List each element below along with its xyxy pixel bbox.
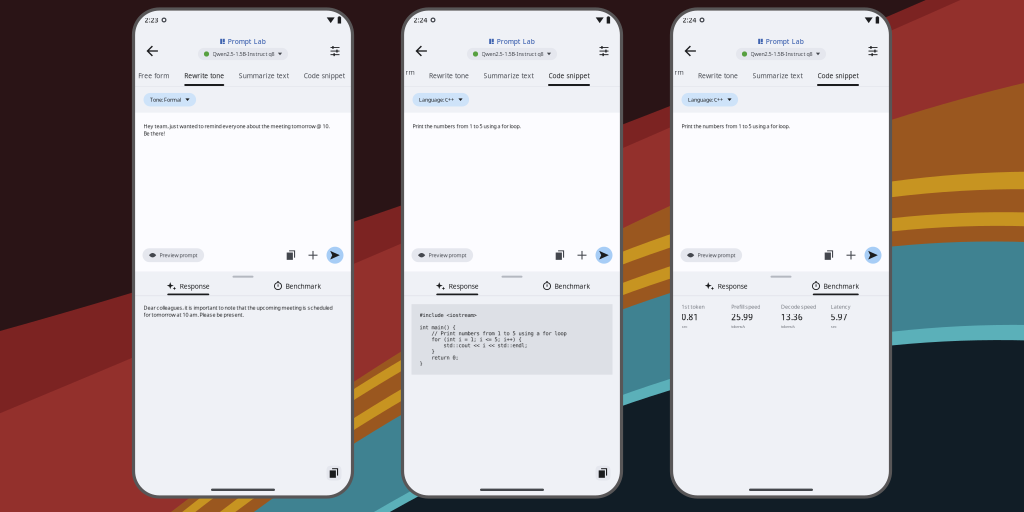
staticText: Preview prompt [698, 252, 736, 259]
staticText: int main() { [419, 324, 455, 330]
staticText: Language: C++ [419, 96, 454, 103]
staticText: Summarize text [483, 71, 533, 80]
button[interactable]: Summarize text [752, 65, 802, 86]
staticText: Prompt Lab [497, 37, 535, 46]
staticText: sec [681, 324, 687, 329]
button[interactable]: Preview prompt [680, 248, 742, 262]
staticText: sec [831, 324, 837, 329]
button[interactable]: Copy prompt [551, 247, 568, 264]
staticText: Hey team, just wanted to remind everyone… [143, 123, 329, 137]
staticText: tokens/s [731, 324, 745, 329]
staticText: 25.99 [731, 312, 753, 322]
button[interactable]: Send [864, 247, 881, 264]
button[interactable]: Back [140, 39, 164, 63]
staticText: Rewrite tone [429, 71, 469, 80]
staticText: Response [180, 282, 210, 291]
button[interactable]: Rewrite tone [429, 65, 469, 86]
staticText: return 0; [419, 354, 458, 361]
button[interactable]: Benchmark [781, 282, 890, 295]
button[interactable]: Back [678, 39, 702, 63]
staticText: for (int i = 1; i <= 5; i++) { [419, 336, 521, 342]
button[interactable]: Response [402, 282, 512, 295]
staticText: // Print numbers from 1 to 5 using a for… [419, 330, 566, 336]
button[interactable]: Free form [138, 65, 170, 86]
button[interactable]: Benchmark [512, 282, 621, 295]
staticText: Prompt Lab [766, 37, 804, 46]
button[interactable]: Rewrite tone [184, 65, 224, 86]
button[interactable]: Language: C++ [412, 93, 469, 106]
button[interactable]: Code snippet [303, 65, 345, 86]
staticText: } [419, 348, 434, 355]
button[interactable]: Benchmark [243, 282, 352, 295]
button[interactable]: Qwen2.5-1.5B-Instruct q8 [198, 48, 288, 60]
staticText: Prefill speed [731, 303, 760, 310]
button[interactable]: Copy prompt [282, 247, 299, 264]
staticText: Summarize text [752, 71, 802, 80]
staticText: Response [718, 282, 748, 291]
button[interactable]: Code snippet [817, 65, 859, 86]
staticText: Tone: Formal [150, 96, 181, 103]
staticText: Rewrite tone [184, 71, 224, 80]
staticText: tokens/s [781, 324, 795, 329]
staticText: Print the numbers from 1 to 5 using a fo… [412, 123, 520, 130]
staticText: 2:24 [682, 16, 696, 24]
staticText: std::cout << i << std::endl; [419, 342, 527, 348]
button[interactable]: Language: C++ [681, 93, 738, 106]
button[interactable]: Preview prompt [411, 248, 473, 262]
button[interactable]: Copy response [326, 466, 341, 481]
staticText: #include <iostream> [419, 312, 476, 318]
staticText: Code snippet [548, 71, 589, 80]
button[interactable]: Qwen2.5-1.5B-Instruct q8 [467, 48, 557, 60]
button[interactable]: Copy code [595, 466, 610, 481]
button[interactable]: Tone: Formal [143, 93, 196, 106]
staticText: Prompt Lab [228, 37, 266, 46]
staticText: Print the numbers from 1 to 5 using a fo… [681, 123, 789, 130]
staticText: Response [449, 282, 479, 291]
staticText: Benchmark [285, 282, 321, 291]
button[interactable]: Response [671, 282, 781, 295]
button[interactable]: Send [595, 247, 612, 264]
button[interactable]: Add attachment [573, 247, 590, 264]
staticText: Code snippet [304, 71, 345, 80]
staticText: 13.36 [781, 312, 803, 322]
staticText: Decode speed [781, 303, 816, 310]
button[interactable]: Back [409, 39, 433, 63]
button[interactable]: Copy prompt [820, 247, 837, 264]
staticText: Rewrite tone [698, 71, 738, 80]
button[interactable]: Response [133, 282, 243, 295]
staticText: Qwen2.5-1.5B-Instruct q8 [212, 50, 274, 58]
staticText: Benchmark [823, 282, 859, 291]
staticText: Qwen2.5-1.5B-Instruct q8 [750, 50, 812, 58]
button[interactable]: Settings [593, 40, 614, 62]
button[interactable]: Settings [862, 40, 883, 62]
staticText: 0.81 [681, 312, 698, 322]
staticText: Preview prompt [160, 252, 198, 259]
staticText: Code snippet [817, 71, 858, 80]
staticText: 1st token [681, 303, 704, 310]
button[interactable]: Settings [324, 40, 345, 62]
staticText: 2:24 [413, 16, 427, 24]
staticText: Dear colleagues, it is important to note… [143, 304, 332, 318]
button[interactable]: Summarize text [483, 65, 533, 86]
button[interactable]: Send [326, 247, 343, 264]
staticText: Preview prompt [429, 252, 467, 259]
button[interactable]: Add attachment [304, 247, 321, 264]
staticText: Free form [138, 71, 169, 80]
staticText: 5.97 [831, 312, 848, 322]
staticText: Latency [831, 303, 851, 310]
staticText: Summarize text [239, 71, 289, 80]
staticText: rm [405, 68, 414, 77]
button[interactable]: Code snippet [548, 65, 590, 86]
staticText: Benchmark [554, 282, 590, 291]
button[interactable]: Summarize text [239, 65, 289, 86]
staticText: } [419, 361, 422, 367]
staticText: rm [674, 68, 683, 77]
button[interactable]: Add attachment [842, 247, 859, 264]
staticText: 2:23 [144, 16, 158, 24]
button[interactable]: Preview prompt [142, 248, 204, 262]
button[interactable]: Rewrite tone [698, 65, 738, 86]
staticText: Qwen2.5-1.5B-Instruct q8 [481, 50, 543, 58]
staticText: Language: C++ [688, 96, 723, 103]
button[interactable]: Qwen2.5-1.5B-Instruct q8 [736, 48, 826, 60]
